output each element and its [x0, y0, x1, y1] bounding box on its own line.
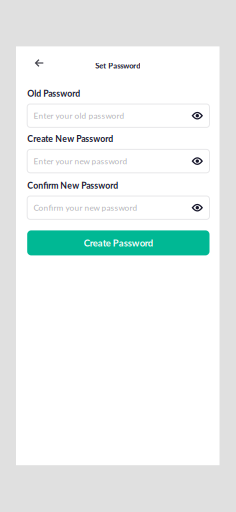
staticText: Old Password	[27, 88, 80, 98]
staticText: Set Password	[95, 61, 140, 70]
button[interactable]: Show Create New Password	[189, 153, 205, 169]
staticText: Create New Password	[27, 133, 113, 144]
staticText: Confirm New Password	[27, 180, 118, 190]
staticText: Create Password	[84, 237, 153, 249]
button[interactable]: Show Old Password	[189, 108, 205, 124]
button[interactable]: Show Confirm New Password	[189, 200, 205, 216]
button[interactable]: Create Password	[27, 230, 209, 255]
button[interactable]: Back	[28, 54, 50, 74]
staticText: Enter your old password	[33, 111, 124, 121]
staticText: Confirm your new password	[33, 203, 137, 213]
staticText: Enter your new password	[33, 156, 127, 166]
